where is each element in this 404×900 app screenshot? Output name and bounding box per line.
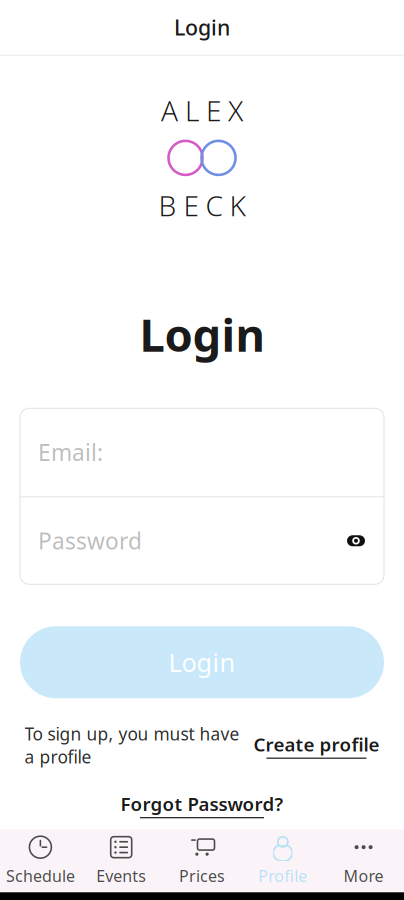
staticText: Login xyxy=(174,13,230,41)
button[interactable]: Login xyxy=(20,626,384,698)
staticText: B E C K xyxy=(158,187,245,224)
button[interactable]: Prices xyxy=(162,829,242,892)
staticText: A L E X xyxy=(161,92,243,129)
button[interactable]: Profile xyxy=(242,829,323,892)
staticText: Events xyxy=(96,865,146,886)
staticText: Create profile xyxy=(253,732,379,757)
button[interactable]: Password xyxy=(20,497,384,584)
button[interactable]: Email: xyxy=(20,408,384,496)
staticText: Login xyxy=(168,645,235,679)
button[interactable]: Forgot Password? xyxy=(120,788,283,821)
button[interactable]: Schedule xyxy=(0,829,81,892)
staticText: Prices xyxy=(179,865,225,886)
staticText: Password xyxy=(38,526,142,556)
button[interactable]: Events xyxy=(81,829,162,892)
staticText: Login xyxy=(139,304,264,364)
staticText: Forgot Password? xyxy=(120,791,283,816)
staticText: More xyxy=(344,865,384,886)
staticText: To sign up, you must have a profile xyxy=(24,722,239,768)
button[interactable]: More xyxy=(323,829,404,892)
staticText: Profile xyxy=(258,865,307,886)
staticText: Schedule xyxy=(6,865,75,886)
button[interactable]: Create profile xyxy=(253,732,379,759)
staticText: Email: xyxy=(38,437,103,467)
